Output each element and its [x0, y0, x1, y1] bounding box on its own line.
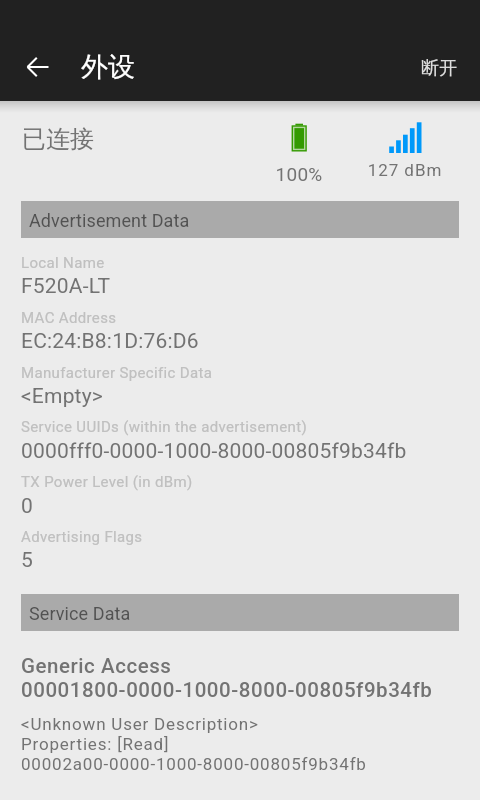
- staticText: 外设: [81, 50, 135, 84]
- staticText: 断开: [421, 57, 457, 80]
- staticText: Generic Access 00001800-0000-1000-8000-0…: [21, 654, 433, 702]
- staticText: 0000fff0-0000-1000-8000-00805f9b34fb: [21, 439, 407, 464]
- staticText: Service Data: [29, 603, 131, 624]
- staticText: 0: [21, 494, 34, 519]
- button[interactable]: 断开: [400, 41, 470, 91]
- staticText: <Empty>: [21, 384, 104, 409]
- staticText: F520A-LT: [21, 274, 111, 299]
- staticText: 100%: [259, 163, 339, 185]
- staticText: TX Power Level (in dBm): [21, 473, 193, 491]
- staticText: Service UUIDs (within the advertisement): [21, 418, 308, 436]
- button[interactable]: Generic Access 00001800-0000-1000-8000-0…: [0, 640, 480, 790]
- staticText: <Unknown User Description> Properties: […: [21, 714, 367, 774]
- staticText: Advertising Flags: [21, 528, 143, 546]
- staticText: Advertisement Data: [29, 210, 190, 231]
- staticText: Local Name: [21, 254, 105, 272]
- button[interactable]: Service Data: [21, 594, 459, 631]
- staticText: 127 dBm: [365, 160, 445, 180]
- staticText: MAC Address: [21, 309, 117, 327]
- button[interactable]: Back: [15, 44, 61, 90]
- staticText: 5: [21, 548, 34, 573]
- staticText: Manufacturer Specific Data: [21, 364, 213, 382]
- staticText: 已连接: [22, 124, 94, 154]
- button[interactable]: Advertisement Data: [21, 201, 459, 238]
- staticText: EC:24:B8:1D:76:D6: [21, 329, 199, 354]
